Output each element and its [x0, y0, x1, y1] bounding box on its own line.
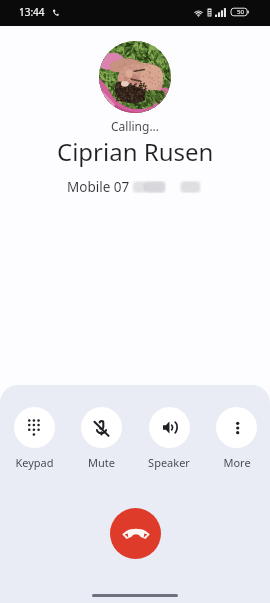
staticText: Mute — [88, 455, 115, 470]
button[interactable]: End call — [110, 508, 161, 559]
staticText: Speaker — [148, 455, 190, 470]
staticText: Keypad — [15, 455, 54, 470]
staticText: Mobile 07 — [67, 178, 130, 196]
button[interactable]: More — [216, 407, 257, 470]
button[interactable]: Mute — [81, 407, 122, 470]
staticText: 50 — [237, 8, 244, 16]
button[interactable]: Speaker — [148, 407, 190, 470]
staticText: Calling... — [111, 118, 160, 134]
staticText: More — [223, 455, 251, 470]
staticText: 13:44 — [19, 5, 45, 19]
button[interactable]: Keypad — [14, 407, 55, 470]
staticText: Ciprian Rusen — [57, 135, 214, 168]
